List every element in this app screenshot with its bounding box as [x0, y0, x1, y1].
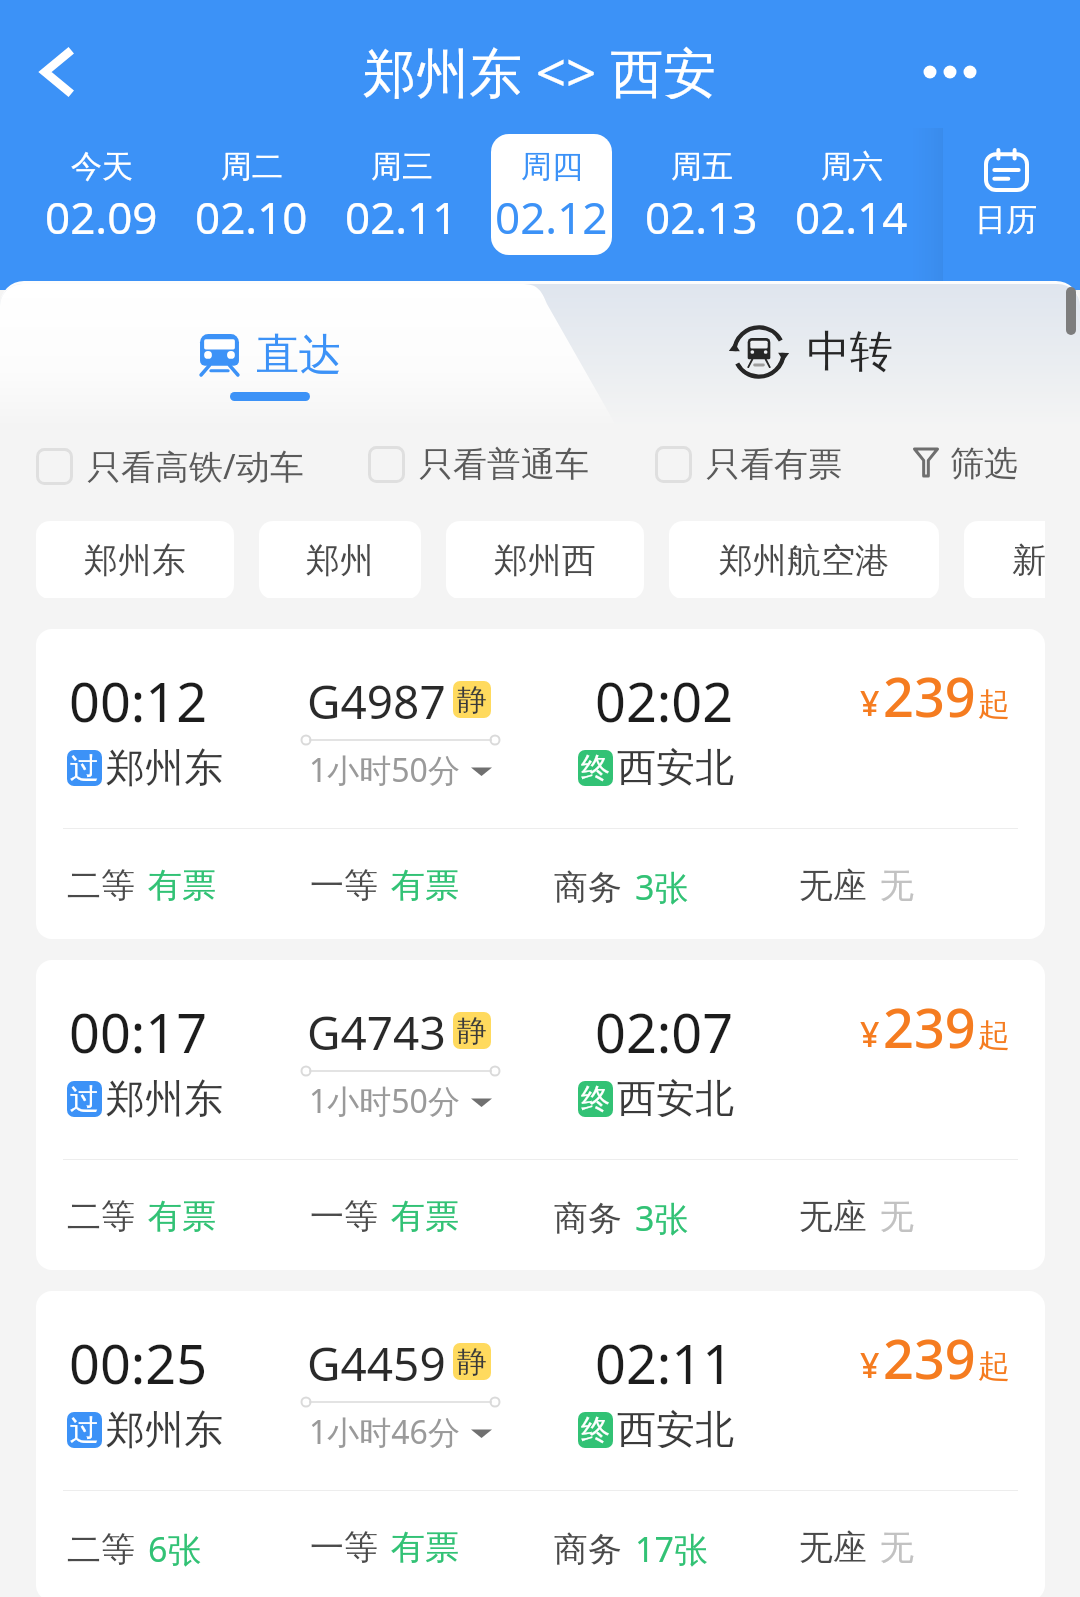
staticText: 有票	[148, 864, 216, 907]
button[interactable]: 只看高铁/动车	[36, 443, 304, 489]
staticText: 00:25	[69, 1326, 208, 1400]
button[interactable]: 00:12	[36, 629, 1045, 939]
staticText: 有票	[391, 1195, 459, 1238]
staticText: 02.09	[45, 187, 158, 247]
staticText: 中转	[807, 325, 893, 379]
staticText: 日历	[975, 200, 1037, 239]
button[interactable]: Filter	[913, 442, 1018, 485]
staticText: 过	[70, 1081, 99, 1117]
staticText: G4987	[307, 670, 446, 733]
staticText: 过	[70, 750, 99, 786]
staticText: 商务	[554, 866, 622, 909]
staticText: 无	[880, 864, 914, 907]
staticText: 周四	[521, 147, 583, 186]
staticText: 02.10	[195, 187, 308, 247]
staticText: 直达	[256, 328, 342, 382]
staticText: 有票	[391, 1526, 459, 1569]
staticText: 筛选	[950, 442, 1018, 485]
staticText: 郑州西	[494, 539, 596, 582]
staticText: 02:07	[595, 995, 734, 1069]
button[interactable]: 周五	[628, 134, 774, 255]
staticText: 郑州东 <> 西安	[363, 35, 717, 107]
staticText: 3张	[635, 864, 689, 910]
staticText: 静	[457, 1012, 487, 1049]
staticText: 今天	[71, 147, 133, 186]
staticText: 郑州东	[106, 1074, 223, 1123]
button[interactable]: 周四	[478, 134, 624, 255]
staticText: 终	[581, 750, 610, 786]
button[interactable]: 00:25	[36, 1291, 1045, 1597]
staticText: 只看普通车	[419, 443, 589, 486]
staticText: 239	[883, 659, 976, 733]
staticText: 17张	[635, 1526, 708, 1572]
staticText: 02.12	[495, 187, 608, 247]
staticText: 周五	[671, 147, 733, 186]
button[interactable]: 只看普通车	[368, 443, 589, 486]
staticText: 只看高铁/动车	[87, 443, 304, 489]
staticText: 00:17	[69, 995, 208, 1069]
staticText: 静	[457, 1343, 487, 1380]
staticText: 二等	[67, 1528, 135, 1571]
staticText: 终	[581, 1412, 610, 1448]
staticText: 无座	[799, 1526, 867, 1569]
staticText: 终	[581, 1081, 610, 1117]
staticText: 郑州航空港	[719, 539, 889, 582]
button[interactable]: Back	[21, 36, 93, 108]
staticText: 二等	[67, 864, 135, 907]
staticText: 商务	[554, 1197, 622, 1240]
button[interactable]: 直达	[0, 284, 545, 427]
staticText: 239	[883, 1321, 976, 1395]
staticText: 无座	[799, 1195, 867, 1238]
staticText: 无座	[799, 864, 867, 907]
staticText: 郑州东	[106, 743, 223, 792]
button[interactable]: 00:17	[36, 960, 1045, 1270]
staticText: ¥	[860, 1011, 880, 1057]
staticText: 郑州东	[84, 539, 186, 582]
staticText: G4459	[307, 1332, 446, 1395]
button[interactable]: 日历	[937, 128, 1074, 290]
staticText: 周六	[821, 147, 883, 186]
button[interactable]: 只看有票	[655, 443, 842, 486]
button[interactable]: 今天	[28, 134, 174, 255]
staticText: 只看有票	[706, 443, 842, 486]
staticText: 00:12	[69, 664, 208, 738]
staticText: 新乡东	[1012, 539, 1045, 582]
staticText: 有票	[148, 1195, 216, 1238]
button[interactable]: 周二	[178, 134, 324, 255]
button[interactable]: More options	[910, 32, 990, 112]
staticText: 1小时46分	[309, 1410, 460, 1454]
staticText: 周三	[371, 147, 433, 186]
staticText: 239	[883, 990, 976, 1064]
button[interactable]: 新乡东	[964, 521, 1045, 598]
button[interactable]: 郑州	[259, 521, 421, 598]
staticText: 02:02	[595, 664, 734, 738]
staticText: 西安北	[617, 1074, 734, 1123]
staticText: 无	[880, 1195, 914, 1238]
staticText: 郑州	[306, 539, 374, 582]
staticText: 02.14	[795, 187, 908, 247]
staticText: 1小时50分	[309, 748, 460, 792]
staticText: 静	[457, 681, 487, 718]
staticText: 过	[70, 1412, 99, 1448]
staticText: 1小时50分	[309, 1079, 460, 1123]
staticText: 周二	[221, 147, 283, 186]
staticText: 一等	[310, 864, 378, 907]
button[interactable]: 郑州东	[36, 521, 234, 598]
staticText: 02.13	[645, 187, 758, 247]
staticText: 起	[978, 1015, 1010, 1055]
staticText: 02:11	[595, 1326, 734, 1400]
staticText: 3张	[635, 1195, 689, 1241]
staticText: 02.11	[345, 187, 458, 247]
staticText: 商务	[554, 1528, 622, 1571]
staticText: 二等	[67, 1195, 135, 1238]
button[interactable]: 周三	[328, 134, 474, 255]
staticText: 有票	[391, 864, 459, 907]
button[interactable]: 郑州航空港	[669, 521, 939, 598]
button[interactable]: 周六	[778, 134, 924, 255]
staticText: 西安北	[617, 743, 734, 792]
staticText: 起	[978, 684, 1010, 724]
button[interactable]: 中转	[545, 284, 1080, 427]
staticText: ¥	[860, 1342, 880, 1388]
button[interactable]: 郑州西	[446, 521, 644, 598]
staticText: 西安北	[617, 1405, 734, 1454]
